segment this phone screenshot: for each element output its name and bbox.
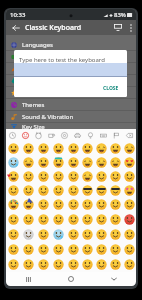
button[interactable]: Emoji 27 <box>122 169 136 183</box>
button[interactable]: Emoji 21 <box>36 169 51 183</box>
button[interactable]: Emoji 11 <box>21 155 36 169</box>
button[interactable]: Emoji 31 <box>51 183 66 197</box>
button[interactable]: Emoji 24 <box>80 169 94 183</box>
button[interactable]: Emoji 9 <box>122 141 136 155</box>
button[interactable]: Emoji 80 <box>108 257 122 272</box>
button[interactable]: Emoji 7 <box>94 141 108 155</box>
button[interactable]: Emoji 1 <box>6 141 21 155</box>
button[interactable]: Emoji 23 <box>66 169 80 183</box>
button[interactable]: Emoji 62 <box>108 227 122 242</box>
button[interactable]: Emoji 2 <box>21 141 36 155</box>
button[interactable]: Emoji 37 <box>6 197 21 212</box>
button[interactable]: Emoji 50 <box>66 212 80 227</box>
button[interactable]: Typing <box>6 63 136 74</box>
button[interactable]: Emoji 57 <box>36 227 51 242</box>
button[interactable]: Layout <box>6 51 136 62</box>
button[interactable]: Emoji 65 <box>21 242 36 257</box>
button[interactable]: Emoji 44 <box>108 197 122 212</box>
button[interactable]: Emoji 28 <box>6 183 21 197</box>
button[interactable]: Emoji 51 <box>80 212 94 227</box>
button[interactable]: Symbols <box>97 129 110 141</box>
button[interactable]: Emoji 76 <box>51 257 66 272</box>
button[interactable]: Emoji 3 <box>36 141 51 155</box>
button[interactable]: Emoji 63 <box>122 227 136 242</box>
button[interactable]: Emoji 25 <box>94 169 108 183</box>
button[interactable]: Key Size <box>6 123 136 129</box>
button[interactable]: Home <box>61 272 81 286</box>
button[interactable]: Objects <box>84 129 97 141</box>
button[interactable]: Emoji 10 <box>6 155 21 169</box>
button[interactable]: Food <box>45 129 58 141</box>
button[interactable]: Emoji 75 <box>36 257 51 272</box>
button[interactable]: Emoji 13 <box>51 155 66 169</box>
button[interactable]: Emoji 46 <box>6 212 21 227</box>
button[interactable]: Emoji 36 <box>122 183 136 197</box>
button[interactable]: Emoji 53 <box>108 212 122 227</box>
button[interactable]: Emoji 5 <box>66 141 80 155</box>
button[interactable]: Emoji 22 <box>51 169 66 183</box>
button[interactable]: Emoji 39 <box>36 197 51 212</box>
button[interactable]: Emoji 35 <box>108 183 122 197</box>
button[interactable]: Emoji 49 <box>51 212 66 227</box>
button[interactable]: Languages <box>6 39 136 50</box>
button[interactable]: Emoji 70 <box>94 242 108 257</box>
button[interactable]: More options <box>125 20 136 35</box>
button[interactable]: Travel <box>71 129 84 141</box>
button[interactable]: Emoji 68 <box>66 242 80 257</box>
button[interactable]: Gestures <box>6 87 136 98</box>
button[interactable]: Emoji 34 <box>94 183 108 197</box>
button[interactable]: Emoji 15 <box>80 155 94 169</box>
button[interactable]: Themes <box>6 99 136 110</box>
button[interactable]: Emoji 19 <box>6 169 21 183</box>
button[interactable]: Emoji 45 <box>122 197 136 212</box>
button[interactable]: Emoji 58 <box>51 227 66 242</box>
button[interactable]: Emoji 71 <box>108 242 122 257</box>
button[interactable]: Emoji 38 <box>21 197 36 212</box>
button[interactable]: Cast screen <box>110 20 125 35</box>
button[interactable]: Emoji 12 <box>36 155 51 169</box>
button[interactable]: Emoji 32 <box>66 183 80 197</box>
button[interactable]: Recents <box>18 272 38 286</box>
button[interactable]: Emoji 73 <box>6 257 21 272</box>
button[interactable]: Sound & Vibration <box>6 111 136 122</box>
button[interactable]: Emoji 40 <box>51 197 66 212</box>
button[interactable]: Emoji 17 <box>108 155 122 169</box>
button[interactable]: Emoji 18 <box>122 155 136 169</box>
button[interactable]: Emoji 72 <box>122 242 136 257</box>
button[interactable]: Recent <box>6 129 19 141</box>
button[interactable]: Emoji 47 <box>21 212 36 227</box>
button[interactable]: Emoji 30 <box>36 183 51 197</box>
button[interactable]: Emoji 43 <box>94 197 108 212</box>
button[interactable]: Emoji 61 <box>94 227 108 242</box>
button[interactable]: Emoji 8 <box>108 141 122 155</box>
button[interactable]: Flags <box>110 129 123 141</box>
button[interactable]: Emoji 74 <box>21 257 36 272</box>
button[interactable]: Emoji 67 <box>51 242 66 257</box>
button[interactable]: Emoji 6 <box>80 141 94 155</box>
button[interactable]: Emoji 56 <box>21 227 36 242</box>
button[interactable]: Emoji 60 <box>80 227 94 242</box>
button[interactable]: Animals <box>32 129 45 141</box>
button[interactable]: Emoji 20 <box>21 169 36 183</box>
button[interactable]: Emoji 48 <box>36 212 51 227</box>
button[interactable]: Emoji 14 <box>66 155 80 169</box>
button[interactable]: Prediction <box>6 75 136 86</box>
button[interactable]: Emoji 79 <box>94 257 108 272</box>
button[interactable]: CLOSE <box>96 83 126 94</box>
button[interactable]: Emoji 16 <box>94 155 108 169</box>
button[interactable]: Emoji 42 <box>80 197 94 212</box>
button[interactable]: Emoji 69 <box>80 242 94 257</box>
button[interactable]: Emoji 77 <box>66 257 80 272</box>
button[interactable]: Activities <box>58 129 71 141</box>
button[interactable]: Back <box>6 20 25 35</box>
button[interactable]: Smileys <box>19 129 32 141</box>
button[interactable]: Emoji 78 <box>80 257 94 272</box>
button[interactable]: Emoji 4 <box>51 141 66 155</box>
button[interactable]: Emoji 26 <box>108 169 122 183</box>
button[interactable]: Emoji 41 <box>66 197 80 212</box>
button[interactable]: Emoji 52 <box>94 212 108 227</box>
button[interactable]: Emoji 29 <box>21 183 36 197</box>
button[interactable]: Emoji 66 <box>36 242 51 257</box>
button[interactable]: Emoji 81 <box>122 257 136 272</box>
button[interactable]: Backspace <box>123 129 136 141</box>
